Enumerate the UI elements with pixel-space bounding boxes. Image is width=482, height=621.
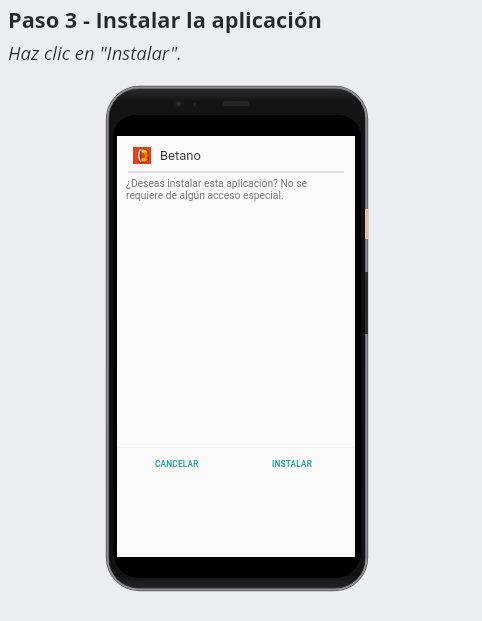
staticText: Betano <box>160 148 201 163</box>
staticText: Paso 3 - Instalar la aplicación <box>8 5 322 35</box>
button[interactable]: CANCELAR <box>147 450 207 478</box>
staticText: Haz clic en "Instalar". <box>8 40 182 65</box>
other: Betano app icon <box>133 147 151 164</box>
staticText: INSTALAR <box>272 459 313 469</box>
staticText: CANCELAR <box>155 459 199 469</box>
staticText: ¿Deseas instalar esta aplicación? No se … <box>126 177 321 202</box>
button[interactable]: INSTALAR <box>264 450 321 478</box>
